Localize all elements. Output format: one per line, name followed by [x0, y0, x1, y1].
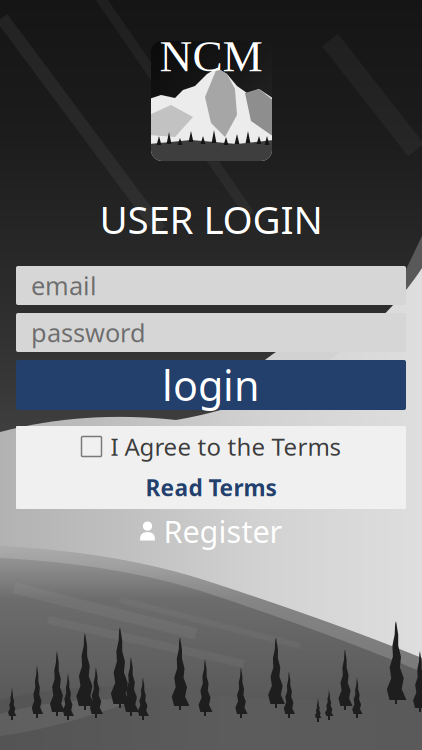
- staticText: login: [162, 358, 260, 412]
- staticText: email: [31, 269, 97, 302]
- button[interactable]: Register: [0, 515, 422, 547]
- staticText: NCM: [159, 31, 262, 81]
- staticText: Read Terms: [145, 472, 276, 502]
- staticText: Register: [163, 511, 282, 551]
- button[interactable]: I Agree to the Terms: [16, 426, 406, 466]
- staticText: USER LOGIN: [99, 193, 322, 245]
- button[interactable]: password: [16, 313, 406, 352]
- staticText: I Agree to the Terms: [110, 431, 340, 462]
- button[interactable]: Read Terms: [16, 466, 406, 508]
- staticText: password: [31, 316, 146, 349]
- button[interactable]: email: [16, 266, 406, 305]
- button[interactable]: login: [16, 360, 406, 410]
